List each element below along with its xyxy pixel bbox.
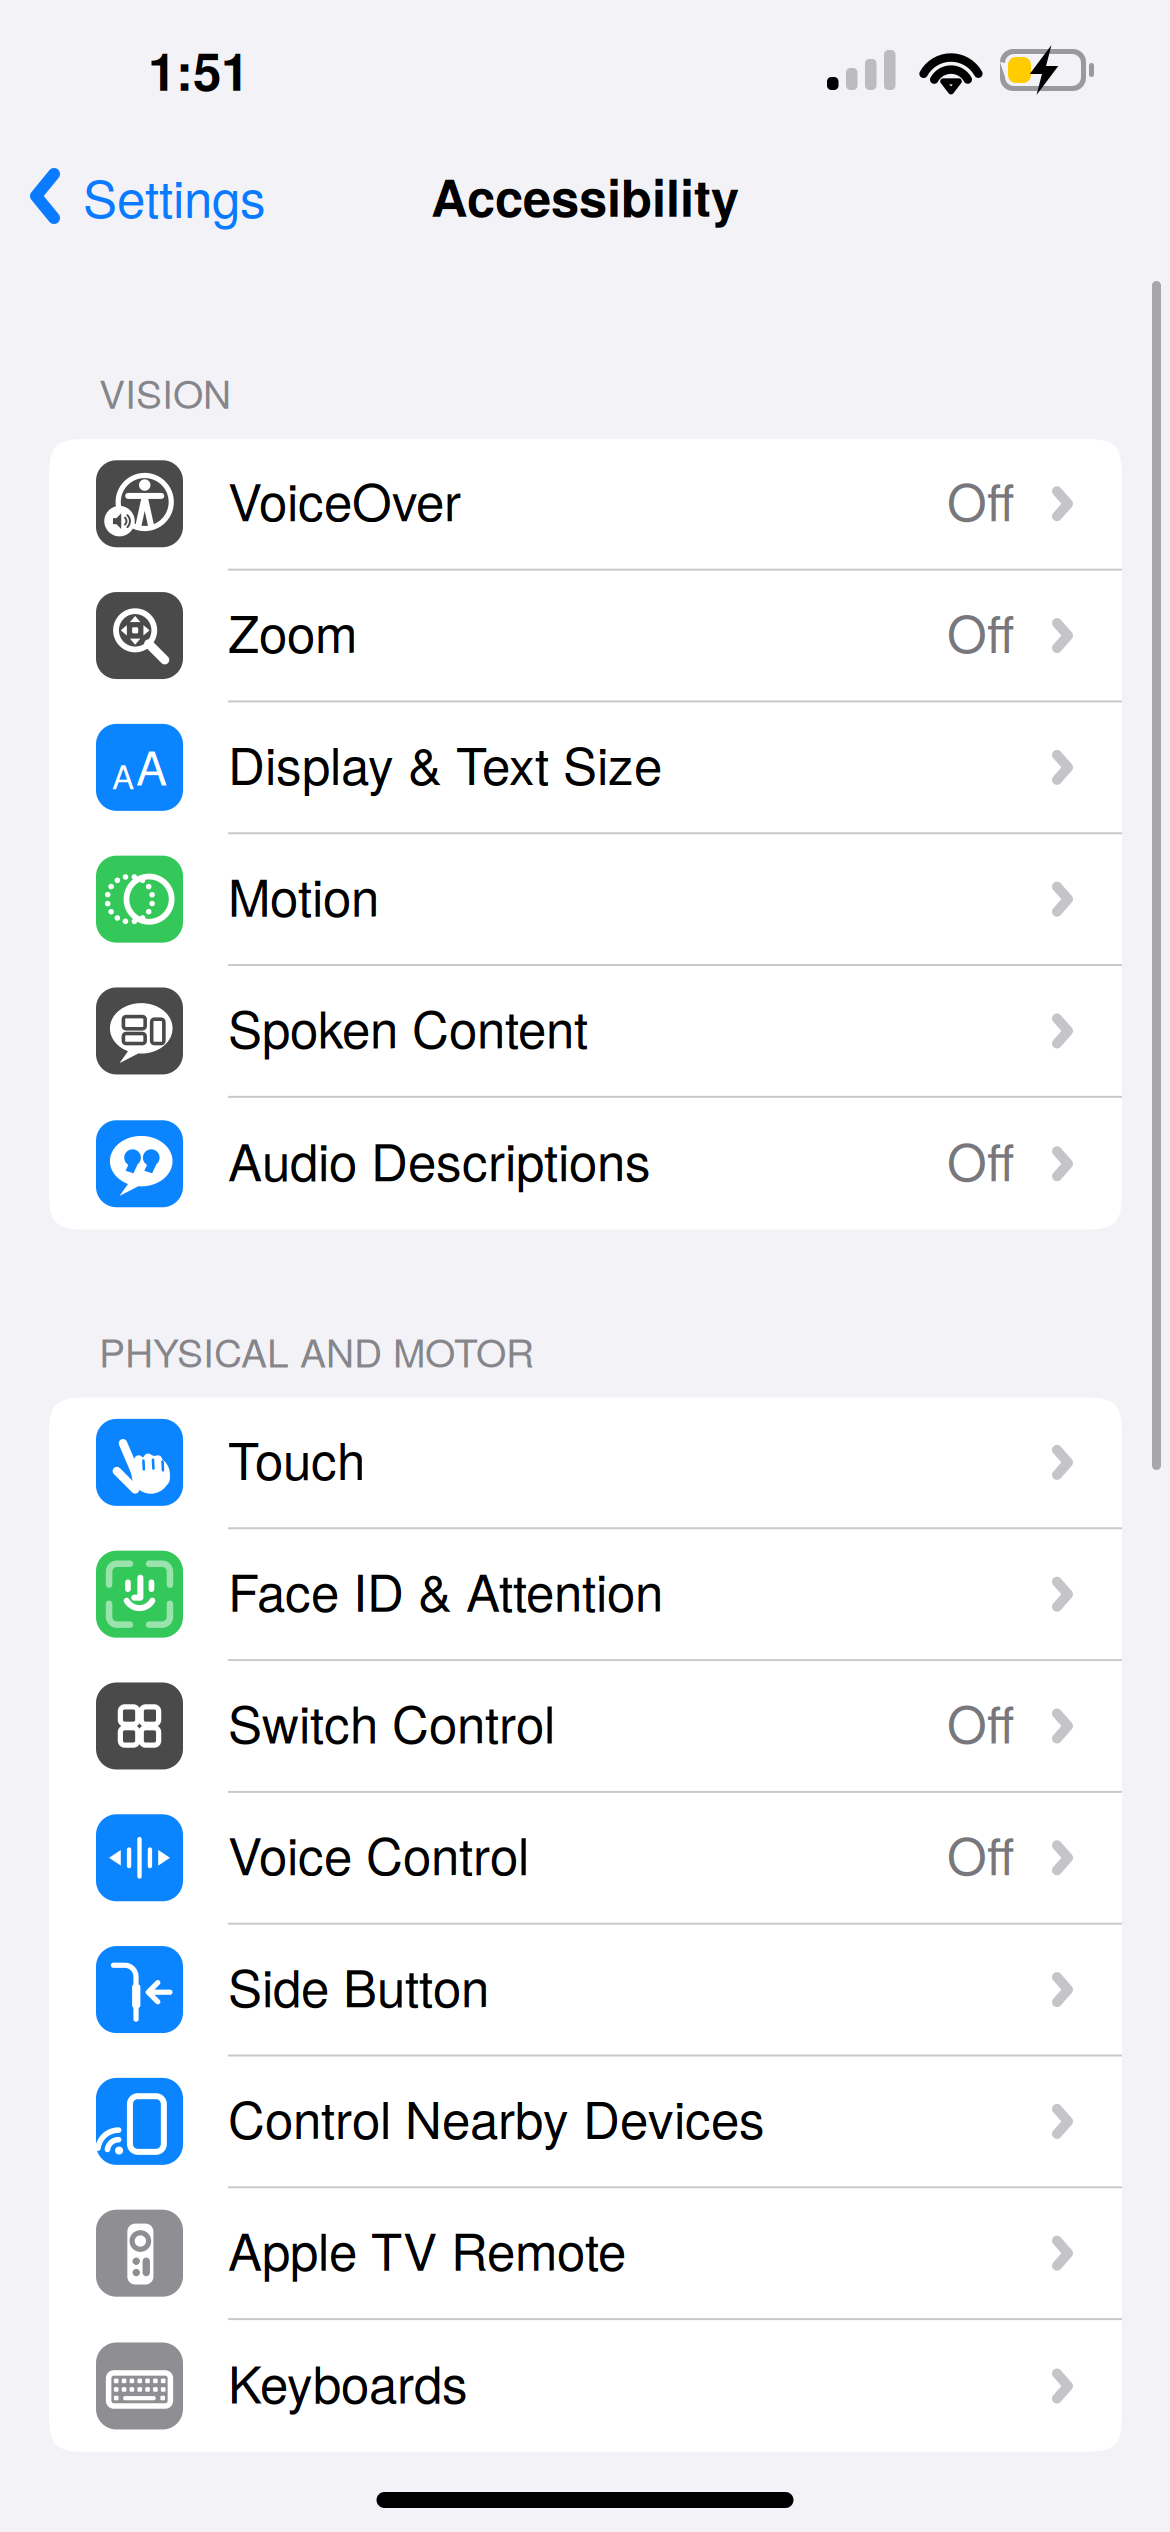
staticText: Motion — [228, 858, 379, 931]
button[interactable]: A — [49, 702, 1122, 834]
button[interactable]: Keyboards — [49, 2320, 1122, 2452]
staticText: Switch Control — [228, 1685, 555, 1758]
staticText: Off — [947, 594, 1014, 667]
staticText: VISION — [99, 364, 231, 420]
button[interactable]: Zoom — [49, 571, 1122, 702]
staticText: Audio Descriptions — [228, 1123, 651, 1196]
staticText: Spoken Content — [228, 990, 588, 1063]
staticText: Face ID & Attention — [228, 1553, 663, 1626]
staticText: Keyboards — [228, 2345, 468, 2418]
button[interactable]: Audio Descriptions — [49, 1098, 1122, 1230]
button[interactable]: Settings — [0, 140, 284, 252]
staticText: A — [112, 751, 134, 799]
button[interactable]: Voice Control — [49, 1793, 1122, 1925]
staticText: Off — [947, 1685, 1014, 1758]
staticText: Control Nearby Devices — [228, 2080, 765, 2153]
button[interactable]: Switch Control — [49, 1661, 1122, 1793]
staticText: A — [136, 732, 167, 799]
staticText: VoiceOver — [228, 463, 461, 536]
staticText: Display & Text Size — [228, 726, 662, 799]
staticText: Touch — [228, 1421, 365, 1494]
staticText: Zoom — [228, 594, 357, 667]
button[interactable]: VoiceOver — [49, 439, 1122, 571]
staticText: Side Button — [228, 1949, 489, 2022]
staticText: Settings — [83, 159, 266, 232]
staticText: 1:51 — [148, 33, 249, 106]
staticText: Off — [947, 1123, 1014, 1196]
staticText: Off — [947, 1817, 1014, 1890]
button[interactable]: Face ID & Attention — [49, 1529, 1122, 1661]
button[interactable]: Apple TV Remote — [49, 2188, 1122, 2320]
button[interactable]: Side Button — [49, 1925, 1122, 2056]
button[interactable]: Control Nearby Devices — [49, 2056, 1122, 2188]
staticText: PHYSICAL AND MOTOR — [99, 1323, 534, 1378]
staticText: Voice Control — [228, 1817, 529, 1890]
button[interactable]: Motion — [49, 834, 1122, 966]
button[interactable]: Spoken Content — [49, 966, 1122, 1098]
staticText: Apple TV Remote — [228, 2212, 626, 2285]
staticText: Accessibility — [431, 160, 739, 232]
button[interactable]: Touch — [49, 1397, 1122, 1529]
staticText: Off — [947, 463, 1014, 536]
